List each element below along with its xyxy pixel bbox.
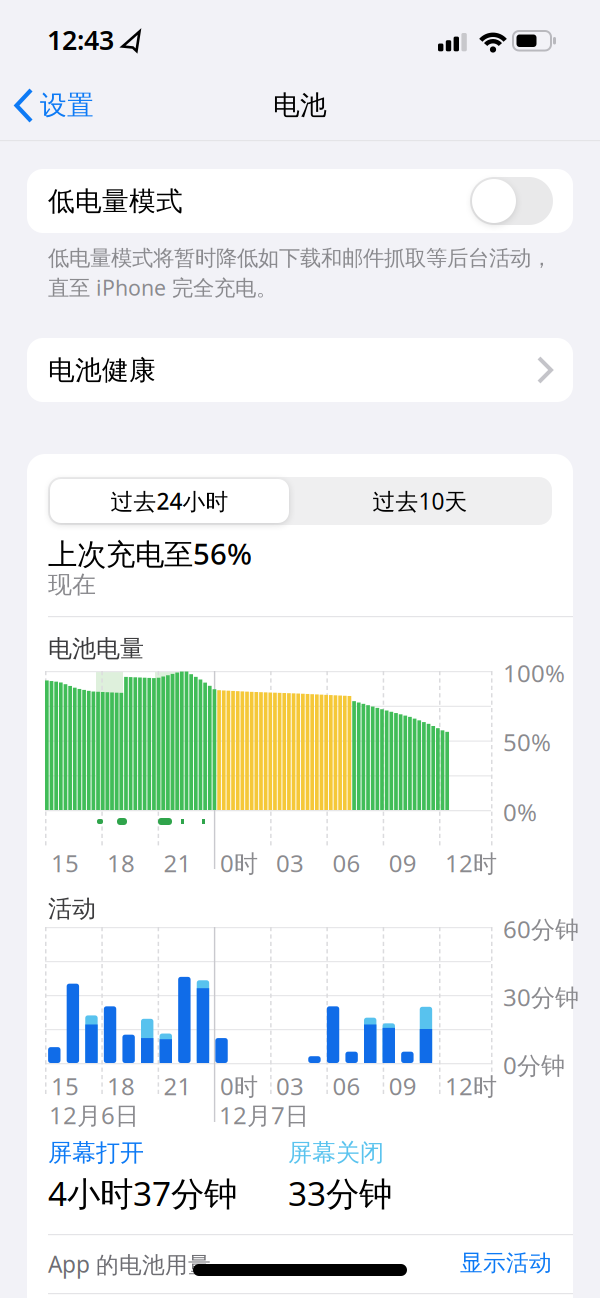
staticText: 过去10天 bbox=[372, 486, 467, 516]
staticText: 09 bbox=[389, 1070, 417, 1102]
staticText: 15 bbox=[51, 1070, 79, 1102]
staticText: 60分钟 bbox=[503, 913, 579, 945]
staticText: 21 bbox=[164, 847, 192, 879]
staticText: 03 bbox=[276, 847, 304, 879]
staticText: 03 bbox=[276, 1070, 304, 1102]
staticText: 0时 bbox=[220, 1070, 258, 1102]
staticText: 12时 bbox=[445, 1070, 497, 1102]
staticText: 18 bbox=[107, 1070, 135, 1102]
staticText: 现在 bbox=[48, 570, 96, 599]
staticText: 4小时37分钟 bbox=[48, 1171, 237, 1215]
staticText: 显示活动 bbox=[460, 1249, 552, 1277]
staticText: 0分钟 bbox=[503, 1049, 565, 1081]
staticText: 06 bbox=[332, 1070, 360, 1102]
staticText: 低电量模式将暂时降低如下载和邮件抓取等后台活动， 直至 iPhone 完全充电。 bbox=[48, 245, 552, 301]
staticText: 15 bbox=[51, 847, 79, 879]
button[interactable]: 电池健康 bbox=[27, 338, 573, 402]
button[interactable] bbox=[470, 177, 553, 225]
staticText: 屏幕关闭 bbox=[288, 1138, 384, 1167]
staticText: 33分钟 bbox=[288, 1171, 392, 1215]
staticText: 12时 bbox=[445, 847, 497, 879]
button[interactable]: 设置 bbox=[14, 88, 124, 124]
staticText: 低电量模式 bbox=[48, 185, 183, 218]
staticText: 上次充电至56% bbox=[48, 534, 252, 573]
button[interactable]: 过去24小时 bbox=[50, 479, 289, 523]
staticText: 屏幕打开 bbox=[48, 1138, 144, 1167]
staticText: App 的电池用量 bbox=[48, 1249, 211, 1279]
staticText: 06 bbox=[332, 847, 360, 879]
staticText: 0% bbox=[503, 796, 537, 828]
staticText: 活动 bbox=[48, 894, 96, 923]
staticText: 电池电量 bbox=[48, 634, 144, 663]
staticText: 100% bbox=[503, 657, 565, 689]
staticText: 30分钟 bbox=[503, 981, 579, 1013]
button[interactable]: 过去10天 bbox=[290, 477, 550, 525]
staticText: 21 bbox=[164, 1070, 192, 1102]
staticText: 12月6日 bbox=[49, 1099, 139, 1131]
staticText: 电池健康 bbox=[48, 354, 156, 387]
staticText: 12:43 bbox=[47, 22, 114, 57]
staticText: 50% bbox=[503, 726, 551, 758]
staticText: 电池 bbox=[273, 89, 327, 122]
button[interactable]: 显示活动 bbox=[460, 1249, 552, 1277]
staticText: 09 bbox=[389, 847, 417, 879]
staticText: 12月7日 bbox=[219, 1099, 309, 1131]
staticText: 0时 bbox=[220, 847, 258, 879]
staticText: 设置 bbox=[40, 89, 94, 122]
staticText: 18 bbox=[107, 847, 135, 879]
staticText: 过去24小时 bbox=[110, 486, 228, 516]
